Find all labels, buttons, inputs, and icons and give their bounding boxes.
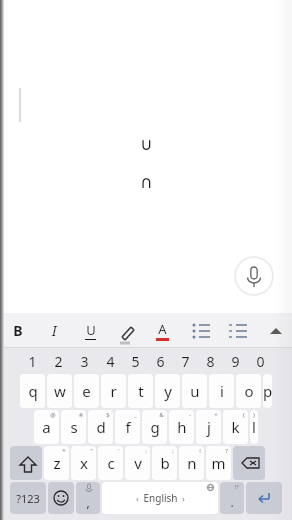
button[interactable]: o — [236, 374, 261, 408]
staticText: l — [252, 417, 256, 437]
staticText: B — [13, 321, 23, 340]
staticText: 7 — [181, 352, 190, 371]
staticText: ? — [225, 447, 228, 455]
button[interactable]: h — [169, 410, 194, 444]
button[interactable]: b — [152, 446, 177, 480]
staticText: . — [230, 494, 234, 510]
staticText: 3 — [80, 352, 89, 371]
button[interactable]: ?123 — [10, 482, 46, 514]
button[interactable]: m — [206, 446, 231, 480]
button[interactable]: ‹ — [102, 482, 218, 514]
button[interactable]: B — [0, 313, 36, 347]
staticText: # — [79, 411, 83, 419]
staticText: › — [182, 492, 185, 504]
button[interactable]: OL — [218, 313, 255, 347]
staticText: 4 — [106, 352, 115, 371]
staticText: English — [143, 491, 178, 505]
staticText: j — [207, 417, 211, 437]
button[interactable]: 9 — [223, 348, 248, 374]
button[interactable]: 3 — [71, 348, 97, 374]
button[interactable]: Emoji — [48, 482, 74, 514]
staticText: !? — [234, 483, 239, 491]
staticText: 0 — [256, 352, 265, 371]
button[interactable]: 8 — [198, 348, 223, 374]
button[interactable]: Backspace — [233, 446, 265, 480]
button[interactable]: 7 — [173, 348, 198, 374]
staticText: U — [86, 321, 96, 339]
button[interactable]: i — [209, 374, 234, 408]
staticText: p — [263, 381, 272, 401]
staticText: 2 — [54, 352, 63, 371]
button[interactable]: 2 — [45, 348, 71, 374]
staticText: x — [80, 453, 88, 473]
button[interactable]: Enter — [246, 482, 282, 514]
button[interactable]: Period — [220, 482, 244, 514]
button[interactable]: A — [144, 313, 181, 347]
button[interactable]: ^ — [255, 313, 292, 347]
button[interactable]: Comma — [76, 482, 100, 514]
button[interactable]: HL — [108, 313, 144, 347]
staticText: ! — [199, 447, 201, 455]
button[interactable]: d — [88, 410, 113, 444]
staticText: v — [134, 453, 142, 473]
button[interactable]: t — [128, 374, 153, 408]
staticText: t — [138, 381, 144, 401]
staticText: 9 — [231, 352, 240, 371]
button[interactable]: w — [47, 374, 72, 408]
button[interactable]: 4 — [97, 348, 123, 374]
button[interactable]: v — [125, 446, 150, 480]
staticText: y — [164, 381, 172, 401]
button[interactable]: 5 — [123, 348, 148, 374]
staticText: i — [220, 381, 224, 401]
staticText: * — [62, 447, 66, 455]
button[interactable]: Shift — [10, 446, 42, 480]
staticText: $ — [106, 411, 110, 419]
button[interactable]: Voice input — [234, 256, 274, 296]
button[interactable]: UL — [181, 313, 218, 347]
button[interactable]: r — [101, 374, 126, 408]
button[interactable]: u — [182, 374, 207, 408]
button[interactable]: y — [155, 374, 180, 408]
staticText: 8 — [206, 352, 215, 371]
button[interactable]: k — [223, 410, 248, 444]
button[interactable]: z — [44, 446, 69, 480]
staticText: d — [96, 417, 106, 437]
staticText: h — [177, 417, 187, 437]
button[interactable]: p — [263, 374, 272, 408]
staticText: n — [187, 453, 197, 473]
button[interactable]: f — [115, 410, 140, 444]
button[interactable]: a — [34, 410, 59, 444]
staticText: m — [211, 453, 226, 473]
staticText: o — [244, 381, 254, 401]
staticText: s — [70, 417, 78, 437]
button[interactable]: e — [74, 374, 99, 408]
staticText: - — [189, 411, 191, 419]
staticText: ' — [118, 447, 120, 455]
staticText: + — [214, 411, 218, 419]
staticText: ?123 — [16, 491, 40, 506]
staticText: w — [54, 381, 66, 401]
staticText: a — [42, 417, 51, 437]
staticText: " — [90, 447, 93, 455]
button[interactable]: I — [36, 313, 72, 347]
button[interactable]: 0 — [248, 348, 273, 374]
button[interactable]: 1 — [19, 348, 45, 374]
button[interactable]: U — [72, 313, 108, 347]
staticText: , — [86, 494, 90, 510]
staticText: z — [53, 453, 61, 473]
button[interactable]: x — [71, 446, 96, 480]
button[interactable]: l — [250, 410, 258, 444]
button[interactable]: n — [179, 446, 204, 480]
staticText: u — [190, 381, 200, 401]
staticText: @ — [50, 411, 56, 419]
button[interactable]: c — [98, 446, 123, 480]
staticText: 6 — [156, 352, 165, 371]
button[interactable]: s — [61, 410, 86, 444]
staticText: I — [52, 321, 57, 340]
button[interactable]: 6 — [148, 348, 173, 374]
staticText: c — [107, 453, 115, 473]
button[interactable]: g — [142, 410, 167, 444]
button[interactable]: q — [20, 374, 45, 408]
staticText: ‹ — [136, 492, 139, 504]
button[interactable]: j — [196, 410, 221, 444]
